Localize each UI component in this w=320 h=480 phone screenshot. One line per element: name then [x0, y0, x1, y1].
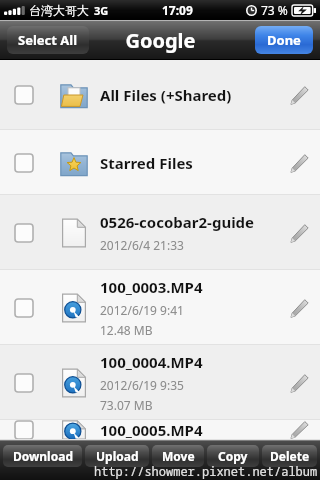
button[interactable]: Select All Files (+Shared) [0, 60, 320, 130]
button[interactable]: Edit [284, 149, 312, 177]
button[interactable]: Select 0526-cocobar2-guide [0, 195, 320, 270]
button[interactable]: Select Starred Files [0, 130, 320, 195]
button[interactable]: Select 100_0003.MP4 [0, 270, 48, 345]
button[interactable]: Move [152, 445, 204, 467]
staticText: Download [13, 448, 73, 464]
staticText: http://showmer.pixnet.net/album [94, 463, 318, 479]
button[interactable]: Select 100_0005.MP4 [0, 420, 48, 440]
button[interactable]: Upload [85, 445, 149, 467]
button[interactable]: Edit [284, 81, 312, 109]
staticText: Google [125, 27, 196, 54]
staticText: Upload [96, 448, 139, 464]
button[interactable]: Select 0526-cocobar2-guide [0, 195, 48, 270]
staticText: Copy [218, 448, 248, 464]
staticText: 3G [94, 3, 109, 18]
staticText: Done [267, 31, 301, 49]
staticText: All Files (+Shared) [100, 85, 232, 105]
button[interactable]: Select 100_0005.MP4 [0, 420, 320, 440]
button[interactable]: Download [3, 445, 82, 467]
staticText: 0526-cocobar2-guide [100, 212, 255, 232]
button[interactable]: Select 100_0004.MP4 [0, 345, 320, 420]
staticText: 台湾大哥大 [29, 3, 89, 18]
staticText: 2012/6/4 21:33 [100, 237, 184, 253]
button[interactable]: Copy [207, 445, 259, 467]
button[interactable]: Edit [284, 219, 312, 247]
button[interactable]: Delete [262, 445, 317, 467]
staticText: 73.07 MB [100, 397, 153, 413]
button[interactable]: Edit [284, 294, 312, 322]
staticText: Delete [270, 448, 310, 464]
button[interactable]: Select All Files (+Shared) [0, 60, 48, 130]
staticText: 100_0005.MP4 [100, 420, 203, 440]
staticText: 2012/6/19 9:35 [100, 377, 184, 393]
staticText: Move [162, 448, 195, 464]
staticText: 17:09 [162, 2, 193, 18]
staticText: 73 % [261, 2, 288, 18]
button[interactable]: Select Starred Files [0, 130, 48, 195]
staticText: 12.48 MB [100, 322, 153, 338]
staticText: Select All [18, 31, 78, 49]
button[interactable]: Done [255, 26, 313, 54]
button[interactable]: Select 100_0004.MP4 [0, 345, 48, 420]
staticText: 2012/6/19 9:41 [100, 302, 184, 318]
button[interactable]: Select 100_0003.MP4 [0, 270, 320, 345]
button[interactable]: Edit [284, 420, 312, 440]
staticText: 100_0003.MP4 [100, 277, 203, 297]
button[interactable]: Select All [7, 26, 89, 54]
button[interactable]: Edit [284, 369, 312, 397]
staticText: Starred Files [100, 153, 193, 173]
staticText: 100_0004.MP4 [100, 352, 203, 372]
